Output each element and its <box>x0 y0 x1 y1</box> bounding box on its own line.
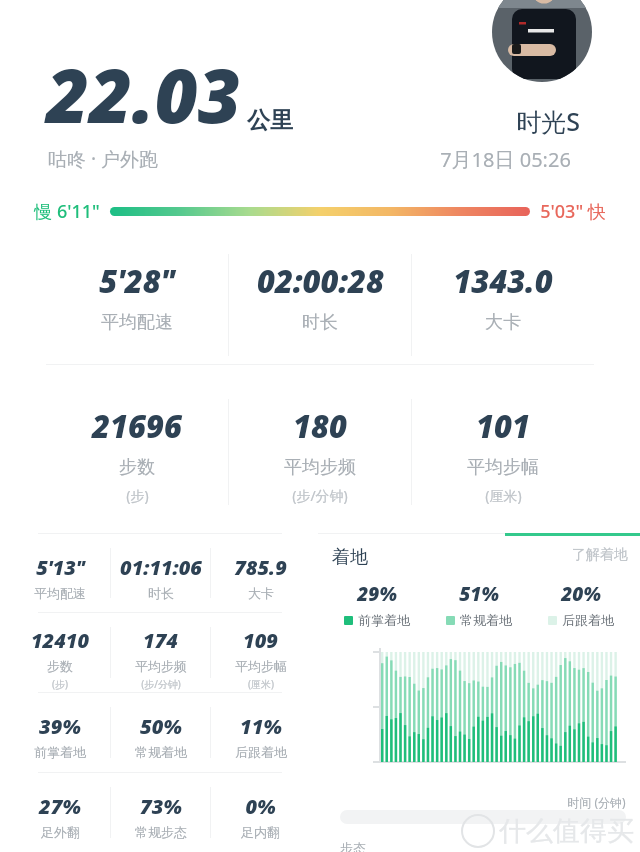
staticText: 了解着地 <box>572 546 628 564</box>
button[interactable]: 180 <box>229 391 411 513</box>
staticText: 步态 <box>340 840 366 852</box>
staticText: 平均步频 <box>135 658 187 674</box>
button[interactable]: 109 <box>211 613 310 692</box>
staticText: 0% <box>245 793 276 820</box>
button[interactable]: 20% <box>530 581 632 628</box>
staticText: 前掌着地 <box>358 612 410 628</box>
staticText: 5'28" <box>99 260 175 302</box>
staticText: 后跟着地 <box>562 612 614 628</box>
staticText: 02:00:28 <box>257 260 384 302</box>
staticText: 咕咚 · 户外跑 <box>48 146 158 172</box>
staticText: 时长 <box>148 585 174 601</box>
staticText: (厘米) <box>485 486 522 505</box>
staticText: 12410 <box>31 627 89 654</box>
staticText: 足外翻 <box>41 824 80 840</box>
button[interactable]: 29% <box>326 581 428 628</box>
staticText: 174 <box>143 627 178 654</box>
staticText: 着地 <box>332 546 368 569</box>
staticText: 什么值得买 <box>499 814 634 848</box>
button[interactable]: 了解着地 <box>572 546 628 564</box>
staticText: 时光S <box>516 104 580 138</box>
button[interactable]: 27% <box>10 773 110 852</box>
staticText: 785.9 <box>234 554 287 581</box>
staticText: (厘米) <box>248 677 274 691</box>
staticText: 29% <box>357 581 397 607</box>
staticText: 常规步态 <box>135 824 187 840</box>
button[interactable]: 51% <box>428 581 530 628</box>
staticText: 平均步幅 <box>235 658 287 674</box>
staticText: 21696 <box>92 405 182 447</box>
staticText: 27% <box>39 793 81 820</box>
button[interactable]: 785.9 <box>211 534 310 612</box>
button[interactable]: 50% <box>111 693 210 772</box>
button[interactable]: 73% <box>111 773 210 852</box>
staticText: 50% <box>140 713 182 740</box>
staticText: 前掌着地 <box>34 744 86 760</box>
staticText: 时长 <box>302 311 338 334</box>
staticText: 5'03" 快 <box>540 199 606 224</box>
staticText: (步) <box>52 677 68 691</box>
staticText: 足内翻 <box>241 824 280 840</box>
button[interactable]: 101 <box>412 391 594 513</box>
button[interactable]: 1343.0 <box>412 246 594 364</box>
staticText: 步数 <box>119 456 155 479</box>
staticText: 平均配速 <box>101 311 173 334</box>
staticText: 大卡 <box>248 585 274 601</box>
button[interactable]: 12410 <box>10 613 110 692</box>
staticText: 平均步频 <box>284 456 356 479</box>
staticText: 时间 (分钟) <box>567 794 626 810</box>
staticText: 180 <box>293 405 347 447</box>
staticText: 20% <box>561 581 601 607</box>
staticText: 公里 <box>247 106 293 135</box>
button[interactable]: 11% <box>211 693 310 772</box>
staticText: 39% <box>39 713 81 740</box>
button[interactable]: 01:11:06 <box>111 534 210 612</box>
staticText: (步/分钟) <box>292 486 348 505</box>
staticText: 109 <box>243 627 278 654</box>
staticText: 51% <box>459 581 499 607</box>
button[interactable]: 用户头像 <box>492 0 592 82</box>
staticText: 1343.0 <box>453 260 553 302</box>
staticText: 5'13" <box>36 554 85 581</box>
staticText: 常规着地 <box>135 744 187 760</box>
staticText: (步) <box>126 486 149 505</box>
staticText: 平均步幅 <box>467 456 539 479</box>
button[interactable]: 174 <box>111 613 210 692</box>
staticText: 平均配速 <box>34 585 86 601</box>
staticText: 步数 <box>47 658 73 674</box>
staticText: 慢 6'11" <box>34 199 100 224</box>
staticText: 大卡 <box>485 311 521 334</box>
staticText: 01:11:06 <box>120 554 202 581</box>
button[interactable]: 5'13" <box>10 534 110 612</box>
staticText: 7月18日 05:26 <box>440 146 571 173</box>
staticText: 73% <box>140 793 182 820</box>
staticText: 后跟着地 <box>235 744 287 760</box>
button[interactable]: 5'28" <box>46 246 228 364</box>
staticText: 101 <box>476 405 530 447</box>
staticText: (步/分钟) <box>141 677 181 691</box>
button[interactable]: 0% <box>211 773 310 852</box>
staticText: 11% <box>240 713 282 740</box>
staticText: 22.03 <box>46 44 241 145</box>
button[interactable]: 39% <box>10 693 110 772</box>
staticText: 常规着地 <box>460 612 512 628</box>
button[interactable]: 21696 <box>46 391 228 513</box>
button[interactable]: 02:00:28 <box>229 246 411 364</box>
